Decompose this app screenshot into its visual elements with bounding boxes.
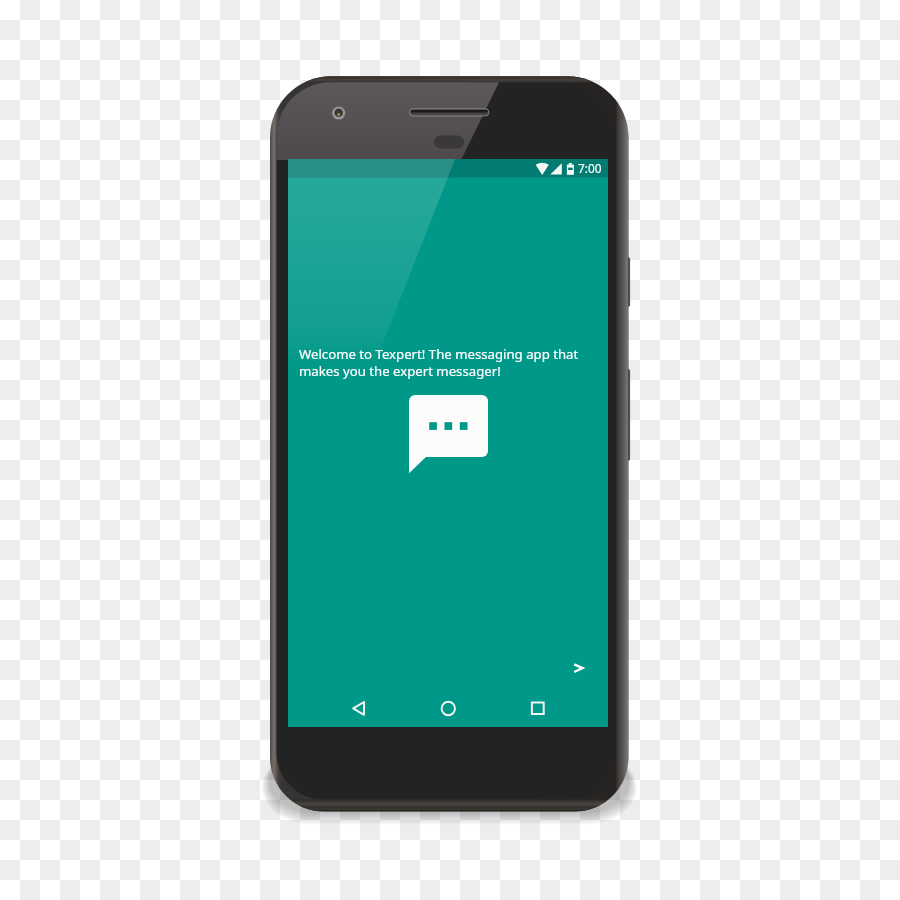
button[interactable]: Next <box>562 652 594 684</box>
button[interactable]: Recent apps <box>519 692 555 726</box>
staticText: 7:00 <box>578 160 602 176</box>
other: Texpert messaging <box>409 395 488 474</box>
other: Wi-Fi, signal and battery <box>531 159 577 178</box>
staticText: Welcome to Texpert! The messaging app th… <box>299 345 589 380</box>
button[interactable]: Home <box>430 692 466 726</box>
button[interactable]: Back <box>341 692 377 726</box>
